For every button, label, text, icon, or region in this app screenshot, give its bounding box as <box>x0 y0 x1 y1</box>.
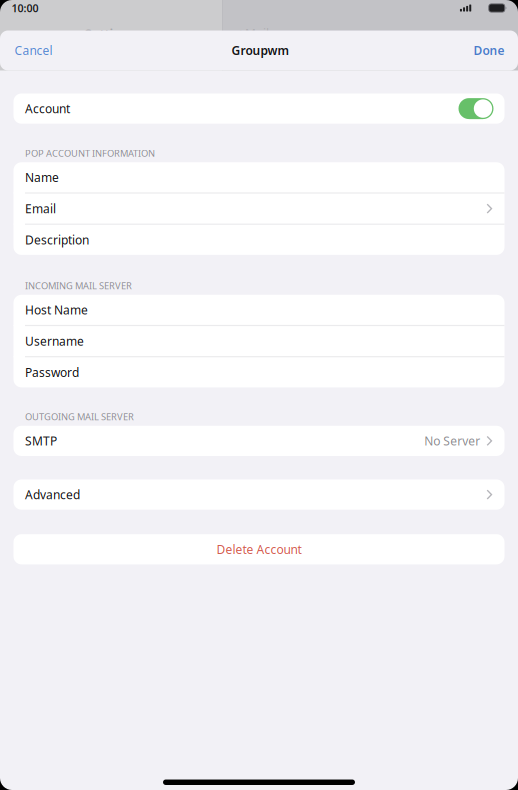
button[interactable]: Username <box>13 326 504 356</box>
button[interactable]: Advanced <box>13 479 504 510</box>
button[interactable]: Cancel <box>14 34 62 64</box>
staticText: Password <box>25 364 79 380</box>
button[interactable]: Delete Account <box>13 534 504 564</box>
staticText: POP ACCOUNT INFORMATION <box>25 147 155 159</box>
staticText: Username <box>25 333 84 349</box>
button[interactable]: Email <box>13 193 504 224</box>
staticText: No Server <box>424 433 480 449</box>
button[interactable]: Done <box>463 34 504 64</box>
staticText: Email <box>25 201 56 216</box>
button[interactable]: Account <box>458 98 493 119</box>
staticText: Name <box>25 169 59 185</box>
staticText: 10:00 <box>11 1 38 15</box>
staticText: Host Name <box>25 302 88 318</box>
staticText: OUTGOING MAIL SERVER <box>25 410 134 423</box>
staticText: Account <box>25 101 70 116</box>
staticText: Settings <box>84 24 137 42</box>
staticText: Cancel <box>14 42 52 58</box>
staticText: Description <box>25 232 89 248</box>
button[interactable]: SMTP <box>13 426 504 456</box>
button[interactable]: Host Name <box>13 295 504 325</box>
button[interactable]: Password <box>13 357 504 387</box>
staticText: SMTP <box>25 433 57 449</box>
button[interactable]: Name <box>13 162 504 192</box>
staticText: < Mail <box>235 25 269 41</box>
staticText: Advanced <box>25 487 80 502</box>
staticText: Groupwm <box>231 42 289 58</box>
staticText: INCOMING MAIL SERVER <box>25 279 132 292</box>
staticText: Done <box>473 42 504 58</box>
staticText: Delete Account <box>216 541 301 557</box>
button[interactable]: Description <box>13 225 504 255</box>
